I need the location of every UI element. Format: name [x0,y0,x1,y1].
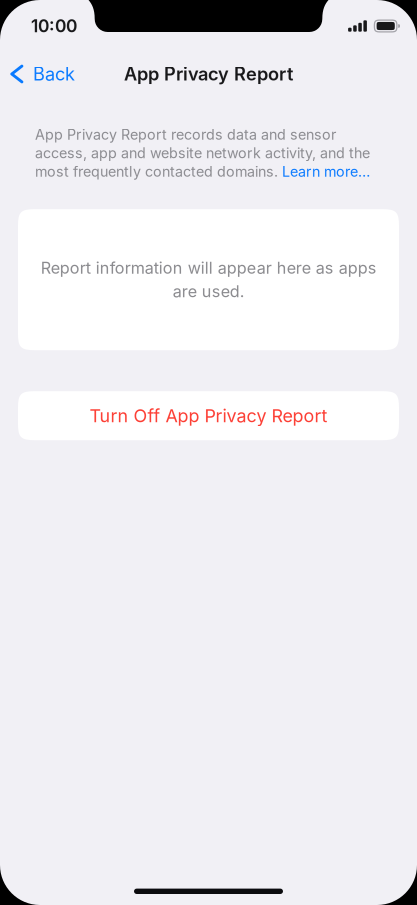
staticText: Turn Off App Privacy Report [89,405,327,426]
staticText: App Privacy Report [124,63,293,85]
button[interactable]: Turn Off App Privacy Report [18,391,399,440]
button[interactable]: Back [0,56,85,92]
staticText: Back [33,63,75,85]
staticText: Report information will appear here as a… [40,258,376,301]
staticText: App Privacy Report records data and sens… [35,126,370,180]
staticText: 10:00 [31,15,77,36]
